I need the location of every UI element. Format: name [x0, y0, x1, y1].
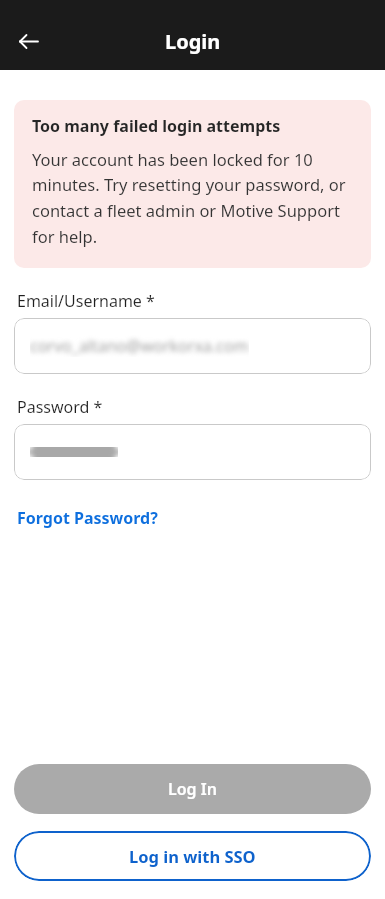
button[interactable]: Forgot Password?: [17, 507, 158, 529]
staticText: Your account has been locked for 10 minu…: [32, 148, 346, 248]
button[interactable]: Log in with SSO: [14, 831, 371, 881]
button[interactable]: [14, 424, 371, 480]
button[interactable]: [9, 21, 49, 61]
button[interactable]: Log In: [14, 764, 371, 814]
staticText: Too many failed login attempts: [32, 115, 281, 137]
button[interactable]: corvo_altano@workorxa.com: [14, 318, 371, 374]
staticText: corvo_altano@workorxa.com: [30, 335, 249, 357]
staticText: Log in with SSO: [129, 845, 256, 867]
staticText: Email/Username *: [17, 290, 155, 312]
staticText: Password *: [17, 396, 103, 418]
staticText: Login: [165, 28, 221, 55]
staticText: Log In: [168, 778, 217, 800]
